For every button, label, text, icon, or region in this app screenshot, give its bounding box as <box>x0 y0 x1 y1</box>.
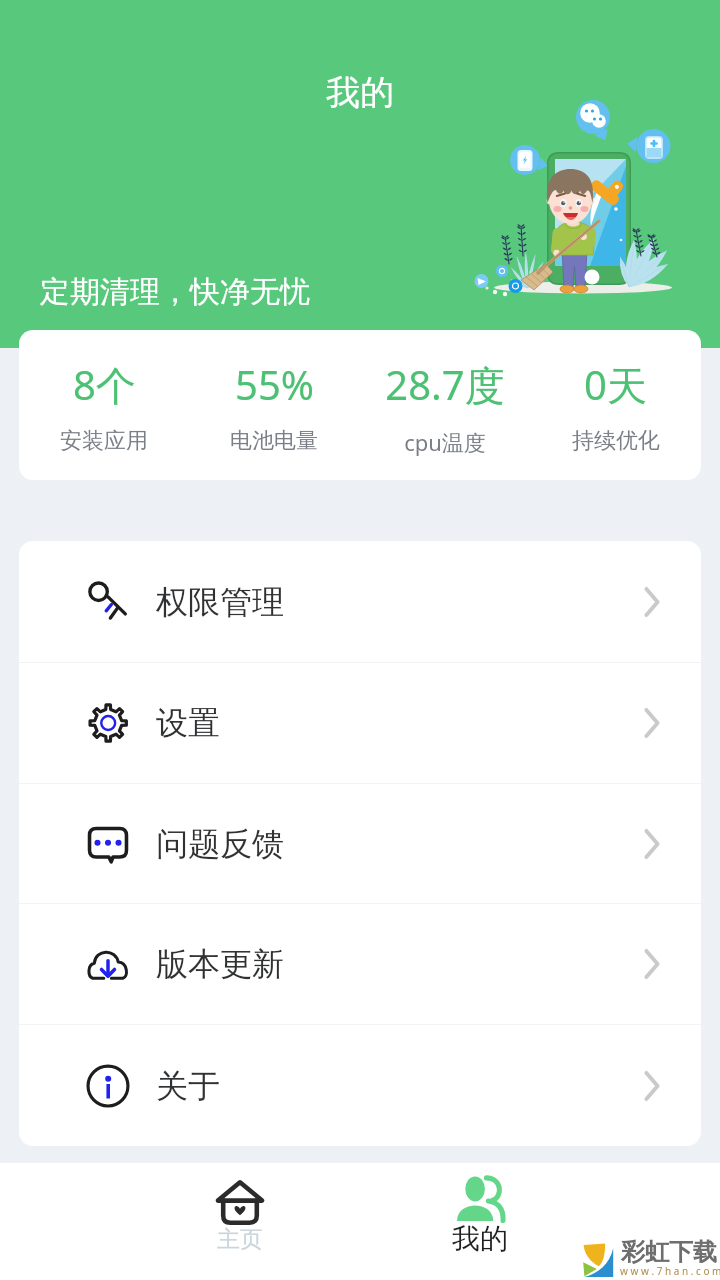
staticText: 关于 <box>156 1066 220 1106</box>
button[interactable]: 我的 <box>420 1163 540 1280</box>
staticText: 安装应用 <box>60 427 148 455</box>
staticText: 8个 <box>73 357 136 412</box>
staticText: w w w . 7 h a n . c o m <box>620 1264 720 1278</box>
staticText: 我的 <box>326 71 394 114</box>
staticText: 问题反馈 <box>156 824 284 864</box>
button[interactable]: 版本更新 <box>19 904 701 1024</box>
button[interactable]: 权限管理 <box>19 541 701 662</box>
staticText: 权限管理 <box>156 582 284 622</box>
staticText: 持续优化 <box>572 427 660 455</box>
staticText: 设置 <box>156 703 220 743</box>
staticText: 55% <box>235 357 314 411</box>
staticText: 28.7度 <box>385 357 505 412</box>
staticText: 我的 <box>452 1221 508 1256</box>
staticText: 电池电量 <box>230 427 318 455</box>
button[interactable]: 问题反馈 <box>19 784 701 903</box>
staticText: 定期清理，快净无忧 <box>40 273 310 311</box>
button[interactable]: 主页 <box>180 1163 300 1280</box>
staticText: cpu温度 <box>404 427 486 457</box>
staticText: 彩虹下载 <box>621 1237 717 1267</box>
staticText: 0天 <box>584 357 647 412</box>
staticText: 版本更新 <box>156 944 284 984</box>
button[interactable]: 关于 <box>19 1025 701 1146</box>
staticText: 主页 <box>217 1225 263 1254</box>
button[interactable]: 设置 <box>19 663 701 783</box>
